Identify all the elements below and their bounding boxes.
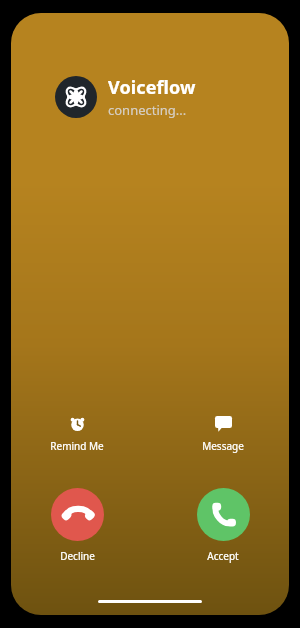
button[interactable]: Accept call [183,488,263,563]
staticText: Voiceflow [108,75,196,100]
staticText: Decline [60,549,95,563]
staticText: Accept [207,549,239,563]
staticText: Remind Me [50,439,104,453]
button[interactable]: Message [183,411,263,455]
button[interactable]: Decline call [37,488,117,563]
button[interactable]: Voiceflow [55,75,196,119]
button[interactable]: Remind Me [37,411,117,455]
staticText: Message [202,439,244,453]
staticText: connecting... [108,101,187,119]
